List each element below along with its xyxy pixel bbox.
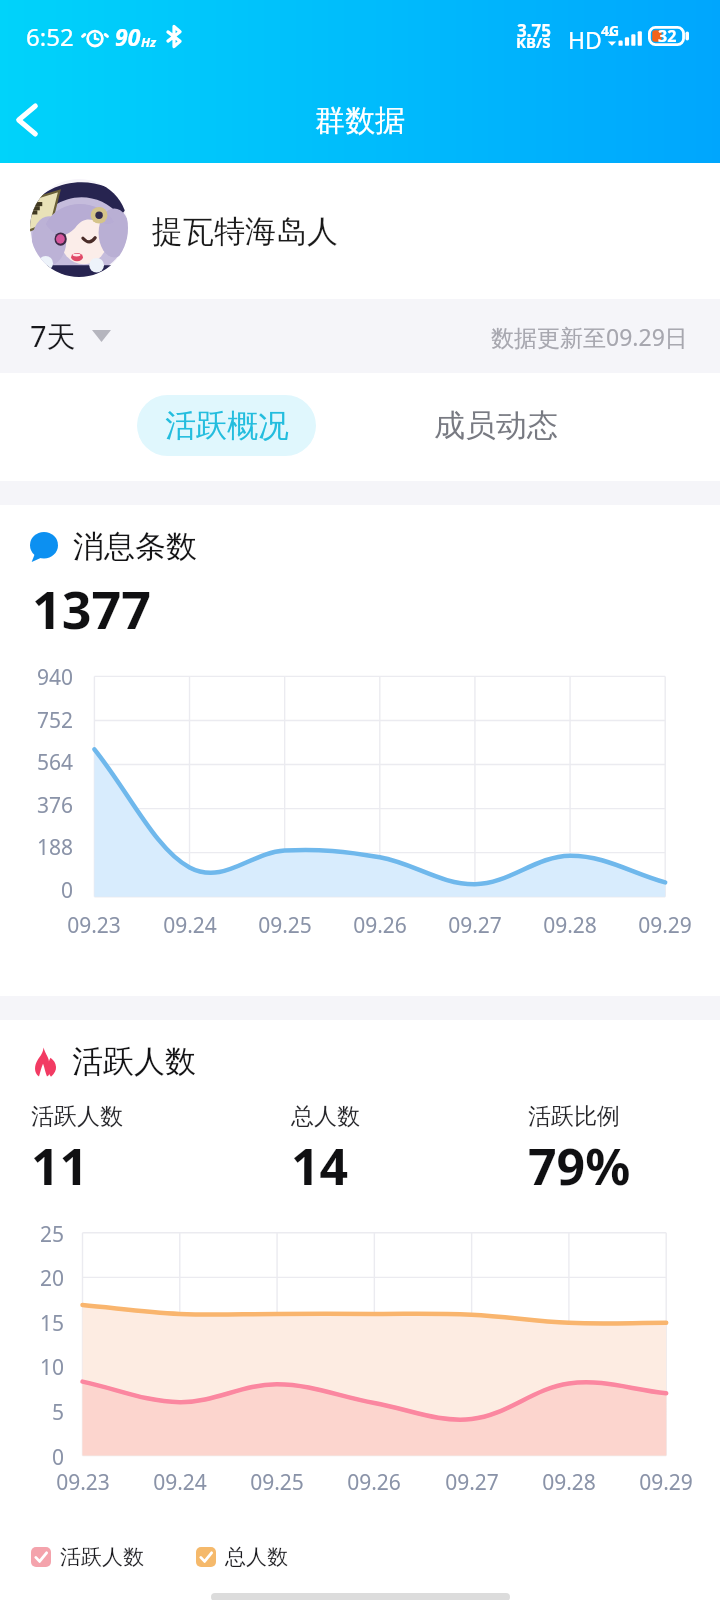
button[interactable]: 活跃概况 [137,395,316,456]
staticText: 752 [12,706,73,735]
staticText: 09.26 [330,911,430,940]
staticText: 活跃概况 [165,406,289,445]
staticText: 1377 [32,573,151,644]
button[interactable]: 活跃人数 [31,1544,144,1570]
staticText: 总人数 [225,1544,288,1570]
button[interactable]: 成员动态 [406,395,585,456]
staticText: 6:52 [26,20,74,53]
staticText: 0 [8,1443,64,1472]
staticText: 消息条数 [73,527,197,566]
staticText: 活跃人数 [72,1042,196,1081]
staticText: 09.23 [44,911,144,940]
staticText: 群数据 [315,102,405,140]
staticText: 09.27 [422,1468,522,1497]
staticText: 5 [8,1398,64,1427]
staticText: 564 [12,748,73,777]
staticText: 活跃人数 [31,1102,123,1131]
staticText: 09.25 [235,911,335,940]
staticText: 数据更新至09.29日 [491,321,688,352]
button[interactable]: 总人数 [196,1544,288,1570]
button[interactable]: Back [0,90,57,150]
staticText: 7天 [30,316,76,356]
staticText: 11 [31,1132,89,1200]
staticText: 15 [8,1309,64,1338]
staticText: 09.28 [519,1468,619,1497]
staticText: HD [568,24,602,55]
staticText: 09.27 [425,911,525,940]
staticText: Hz [141,33,157,51]
staticText: 09.25 [227,1468,327,1497]
staticText: 09.28 [520,911,620,940]
staticText: 90 [115,21,141,52]
staticText: 4G [601,21,620,40]
staticText: 提瓦特海岛人 [152,212,338,251]
staticText: 14 [291,1132,349,1200]
staticText: 20 [8,1264,64,1293]
button[interactable]: 提瓦特海岛人 [0,163,720,299]
staticText: 25 [8,1220,64,1249]
button[interactable]: 7天 [30,316,111,356]
staticText: KB/S [516,32,551,52]
staticText: 188 [12,833,73,862]
staticText: 10 [8,1353,64,1382]
staticText: 940 [12,663,73,692]
staticText: 成员动态 [434,406,558,445]
staticText: 09.26 [324,1468,424,1497]
staticText: 09.24 [140,911,240,940]
staticText: 3.75 [517,19,551,42]
staticText: 32 [658,25,677,45]
staticText: 09.29 [615,911,715,940]
staticText: 09.24 [130,1468,230,1497]
staticText: 总人数 [291,1102,360,1131]
staticText: 活跃比例 [528,1102,620,1131]
staticText: 376 [12,791,73,820]
staticText: 09.29 [616,1468,716,1497]
staticText: 活跃人数 [60,1544,144,1570]
staticText: 09.23 [33,1468,133,1497]
staticText: 0 [12,876,73,905]
staticText: 79% [528,1132,631,1200]
